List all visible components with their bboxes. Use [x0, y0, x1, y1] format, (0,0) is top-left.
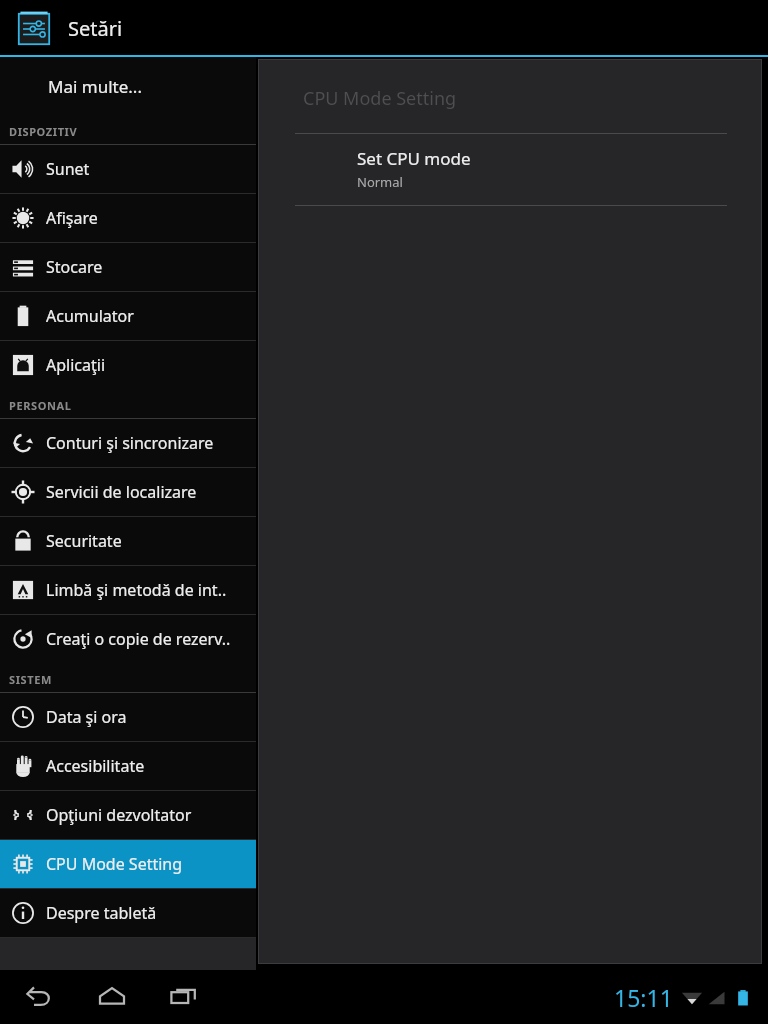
- staticText: Afişare: [46, 207, 98, 229]
- staticText: Acumulator: [46, 305, 134, 327]
- staticText: PERSONAL: [9, 398, 72, 413]
- button[interactable]: Despre tabletă: [0, 889, 256, 937]
- staticText: Data şi ora: [46, 706, 127, 728]
- staticText: Sunet: [46, 158, 90, 180]
- button[interactable]: Aplicaţii: [0, 341, 256, 389]
- other: Wi-Fi: [681, 987, 703, 1009]
- button[interactable]: Conturi şi sincronizare: [0, 419, 256, 467]
- staticText: Stocare: [46, 256, 103, 278]
- staticText: Securitate: [46, 530, 122, 552]
- other: Battery: [732, 987, 754, 1009]
- button[interactable]: Opţiuni dezvoltator: [0, 791, 256, 839]
- button[interactable]: Afişare: [0, 194, 256, 242]
- staticText: Accesibilitate: [46, 755, 145, 777]
- staticText: Limbă şi metodă de int..: [46, 579, 227, 601]
- staticText: 15:11: [614, 982, 673, 1013]
- button[interactable]: Sunet: [0, 145, 256, 193]
- button[interactable]: Stocare: [0, 243, 256, 291]
- button[interactable]: Acumulator: [0, 292, 256, 340]
- staticText: Set CPU mode: [357, 147, 471, 170]
- button[interactable]: Mai multe...: [0, 57, 256, 115]
- staticText: CPU Mode Setting: [303, 86, 457, 111]
- button[interactable]: Servicii de localizare: [0, 468, 256, 516]
- button[interactable]: Creaţi o copie de rezerv..: [0, 615, 256, 663]
- staticText: Setări: [68, 15, 123, 42]
- button[interactable]: Securitate: [0, 517, 256, 565]
- button[interactable]: Accesibilitate: [0, 742, 256, 790]
- staticText: Servicii de localizare: [46, 481, 197, 503]
- button[interactable]: Data şi ora: [0, 693, 256, 741]
- staticText: Aplicaţii: [46, 354, 106, 376]
- staticText: Normal: [357, 173, 403, 191]
- button[interactable]: CPU Mode Setting: [0, 840, 256, 888]
- other: Signal: [706, 987, 728, 1009]
- button[interactable]: Recent apps: [162, 975, 206, 1019]
- staticText: CPU Mode Setting: [46, 853, 183, 875]
- staticText: Opţiuni dezvoltator: [46, 804, 192, 826]
- button[interactable]: Set CPU mode: [259, 134, 761, 205]
- button[interactable]: Home: [90, 975, 134, 1019]
- button[interactable]: Limbă şi metodă de int..: [0, 566, 256, 614]
- button[interactable]: Back: [18, 975, 62, 1019]
- staticText: Mai multe...: [48, 75, 142, 98]
- staticText: Creaţi o copie de rezerv..: [46, 628, 231, 650]
- staticText: SISTEM: [9, 672, 52, 687]
- staticText: Conturi şi sincronizare: [46, 432, 214, 454]
- staticText: DISPOZITIV: [9, 124, 78, 139]
- staticText: Despre tabletă: [46, 902, 157, 924]
